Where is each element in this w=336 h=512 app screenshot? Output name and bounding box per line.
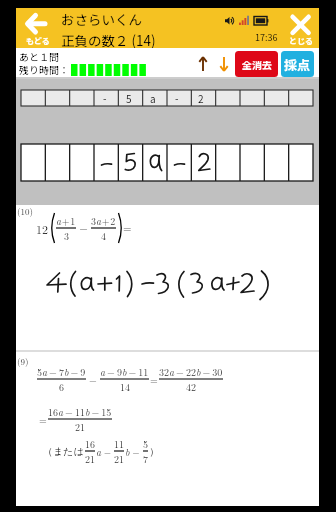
button[interactable] [69, 90, 93, 106]
button[interactable] [237, 90, 261, 106]
staticText: a [150, 91, 156, 105]
button[interactable] [45, 90, 69, 106]
staticText: 採点 [284, 55, 311, 74]
staticText: 6 [59, 380, 64, 394]
button[interactable] [285, 144, 309, 181]
staticText: 11 [114, 437, 124, 451]
button[interactable]: Previous question [193, 54, 213, 74]
button[interactable]: 採点 [281, 51, 314, 77]
staticText: a − 9b − 11 [100, 365, 149, 379]
staticText: - [175, 91, 179, 105]
staticText: 残り時間： [19, 62, 69, 76]
button[interactable] [261, 144, 285, 181]
button[interactable] [117, 144, 141, 181]
button[interactable] [69, 144, 93, 181]
staticText: もどる [26, 35, 50, 47]
staticText: おさらいくん [61, 9, 142, 29]
staticText: 12 [36, 220, 49, 237]
staticText: 5a − 7b − 9 [37, 365, 86, 379]
staticText: ） [149, 445, 159, 458]
staticText: 21 [114, 452, 124, 466]
staticText: (10) [17, 205, 34, 218]
button[interactable]: Back [16, 8, 60, 48]
staticText: 全消去 [242, 57, 272, 71]
button[interactable]: 2 [189, 90, 213, 106]
button[interactable]: Next question [214, 54, 234, 74]
button[interactable] [213, 90, 237, 106]
staticText: a + 1 [56, 214, 76, 228]
button[interactable] [189, 144, 213, 181]
button[interactable]: 全消去 [235, 51, 278, 77]
button[interactable] [213, 144, 237, 181]
staticText: b − [125, 445, 142, 459]
button[interactable] [21, 90, 45, 106]
staticText: 正負の数２ (14) [61, 30, 156, 49]
button[interactable] [141, 144, 165, 181]
button[interactable]: a [141, 90, 165, 106]
staticText: あと１問 [19, 49, 59, 63]
button[interactable] [261, 90, 285, 106]
staticText: 3 [64, 229, 69, 243]
staticText: （または [43, 445, 84, 458]
button[interactable]: - [165, 90, 189, 106]
staticText: とじる [289, 35, 313, 47]
staticText: 5 [126, 91, 132, 105]
staticText: 7 [143, 452, 148, 466]
staticText: = [123, 220, 132, 236]
button[interactable] [21, 144, 45, 181]
staticText: (9) [17, 355, 29, 368]
staticText: 14 [120, 380, 130, 394]
button[interactable]: - [93, 90, 117, 106]
staticText: 17:36 [255, 31, 278, 44]
button[interactable] [93, 144, 117, 181]
staticText: − [87, 373, 99, 387]
staticText: 3a + 2 [91, 214, 116, 228]
button[interactable] [237, 144, 261, 181]
staticText: − [77, 220, 90, 236]
staticText: 21 [85, 452, 95, 466]
staticText: = [150, 373, 158, 387]
button[interactable]: Close [285, 8, 319, 48]
staticText: 42 [186, 380, 196, 394]
staticText: 5 [143, 437, 148, 451]
button[interactable] [165, 144, 189, 181]
button[interactable]: 5 [117, 90, 141, 106]
staticText: 16a − 11b − 15 [48, 405, 112, 419]
staticText: = [39, 413, 47, 427]
staticText: 21 [75, 420, 85, 434]
button[interactable] [285, 90, 309, 106]
staticText: a − [96, 445, 113, 459]
staticText: 4 [101, 229, 106, 243]
staticText: 16 [85, 437, 95, 451]
staticText: 2 [198, 91, 204, 105]
staticText: 32a − 22b − 30 [159, 365, 223, 379]
button[interactable] [45, 144, 69, 181]
staticText: - [103, 91, 107, 105]
